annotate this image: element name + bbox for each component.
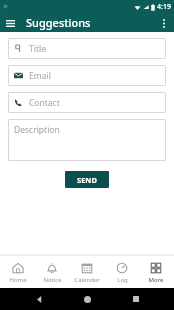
button[interactable]: Email: [8, 65, 166, 86]
button[interactable]: Title: [8, 38, 166, 59]
button[interactable]: Log: [105, 258, 139, 288]
button[interactable]: Open navigation drawer: [2, 15, 18, 31]
button[interactable]: Home: [77, 289, 97, 309]
staticText: Home: [9, 276, 27, 284]
button[interactable]: Recent apps: [126, 289, 146, 309]
button[interactable]: Home: [1, 258, 35, 288]
staticText: Title: [29, 43, 46, 55]
staticText: Description: [14, 124, 60, 136]
button[interactable]: Contact: [8, 92, 166, 113]
staticText: Contact: [29, 97, 60, 109]
staticText: Calendar: [74, 276, 100, 284]
staticText: Log: [117, 276, 128, 284]
button[interactable]: Calendar: [70, 258, 104, 288]
staticText: Email: [29, 70, 51, 82]
button[interactable]: More options: [156, 15, 172, 31]
button[interactable]: Back: [29, 289, 49, 309]
staticText: SEND: [77, 175, 97, 185]
staticText: 4:19: [157, 2, 171, 12]
button[interactable]: More: [139, 258, 173, 288]
staticText: Notice: [43, 276, 62, 284]
staticText: More: [148, 276, 164, 284]
button[interactable]: Notice: [35, 258, 69, 288]
button[interactable]: Description: [8, 119, 166, 161]
staticText: Suggestions: [26, 15, 91, 30]
button[interactable]: SEND: [65, 171, 109, 188]
